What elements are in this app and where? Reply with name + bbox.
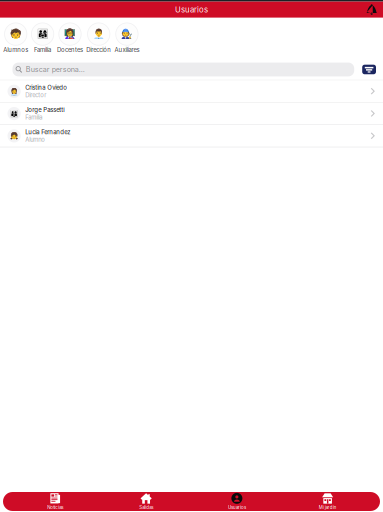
staticText: Lucia Fernandez [25, 128, 70, 136]
button[interactable]: 🧒 [3, 23, 28, 53]
button[interactable]: 👧 [0, 125, 383, 147]
staticText: Mi jardín [319, 505, 337, 510]
staticText: 👩‍💼 [10, 87, 18, 95]
button[interactable]: 👨‍👩‍👦 [0, 103, 383, 125]
staticText: 👧 [10, 132, 18, 140]
staticText: Director [25, 92, 46, 99]
button[interactable]: Salidas [101, 493, 192, 510]
staticText: 👨‍👩‍👧 [37, 29, 49, 39]
staticText: 🧑‍🔧 [121, 29, 133, 39]
staticText: Familia [25, 114, 42, 121]
button[interactable]: 👩‍💼 [0, 80, 383, 103]
staticText: Salidas [139, 505, 153, 510]
button[interactable]: Usuarios [191, 493, 282, 510]
staticText: Auxiliares [114, 46, 139, 53]
staticText: Cristina Oviedo [25, 84, 67, 91]
staticText: Jorge Passetti [25, 106, 64, 113]
staticText: Noticias [47, 505, 63, 510]
staticText: Usuarios [175, 5, 208, 14]
button[interactable]: Filtros [362, 65, 376, 74]
button[interactable]: 👩‍🏫 [57, 23, 83, 53]
staticText: Alumnos [3, 46, 28, 53]
button[interactable]: Notificaciones [366, 4, 377, 15]
staticText: 👩‍🏫 [64, 29, 76, 39]
button[interactable]: Mi jardín [282, 493, 373, 510]
button[interactable]: 👨‍💼 [86, 23, 111, 53]
button[interactable]: 👨‍👩‍👧 [31, 23, 54, 53]
staticText: Docentes [57, 46, 83, 53]
staticText: Familia [34, 46, 51, 53]
staticText: 👨‍💼 [93, 29, 105, 39]
button[interactable]: Noticias [10, 493, 101, 510]
staticText: Usuarios [228, 505, 246, 510]
staticText: 🧒 [10, 29, 22, 39]
staticText: Dirección [86, 46, 111, 53]
staticText: Alumno [25, 136, 45, 143]
staticText: Buscar persona... [26, 65, 85, 74]
staticText: 👨‍👩‍👦 [10, 110, 18, 117]
button[interactable]: 🧑‍🔧 [114, 23, 139, 53]
